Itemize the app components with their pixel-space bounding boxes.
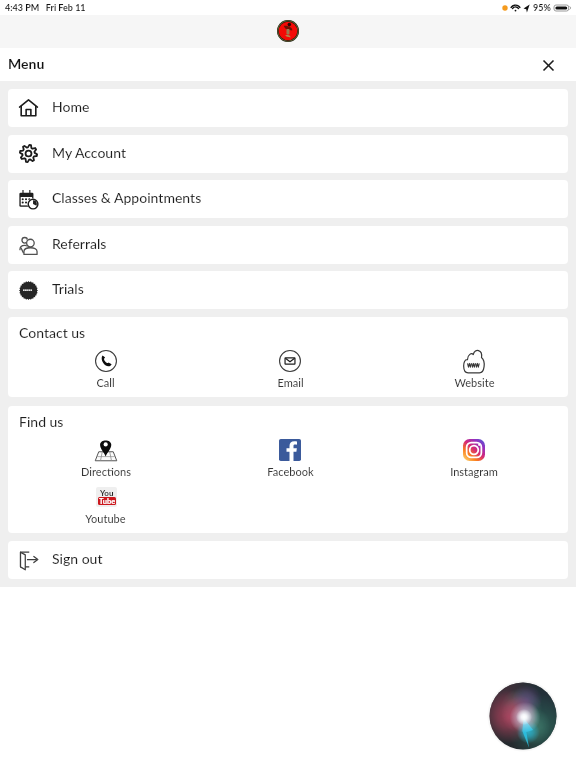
staticText: 95% xyxy=(533,2,551,13)
staticText: Menu xyxy=(8,55,45,72)
button[interactable]: Trials xyxy=(8,271,568,309)
button[interactable]: Referrals xyxy=(8,226,568,264)
button[interactable]: Website xyxy=(382,350,566,389)
button[interactable]: Instagram xyxy=(382,439,566,478)
staticText: Tube xyxy=(99,497,116,505)
staticText: Referrals xyxy=(52,235,107,252)
staticText: Sign out xyxy=(52,550,103,567)
button[interactable]: Facebook xyxy=(198,439,382,478)
button[interactable]: Sign out xyxy=(8,541,568,579)
staticText: Contact us xyxy=(19,324,86,341)
staticText: Directions xyxy=(81,465,131,478)
staticText: Facebook xyxy=(267,465,314,478)
button[interactable]: My Account xyxy=(8,135,568,173)
staticText: Find us xyxy=(19,413,64,430)
staticText: My Account xyxy=(52,144,126,161)
staticText: You xyxy=(100,488,114,498)
button[interactable]: Close menu xyxy=(536,53,560,77)
staticText: 4:43 PM Fri Feb 11 xyxy=(5,2,86,13)
button[interactable]: Email xyxy=(198,350,382,389)
button[interactable]: Call xyxy=(13,350,198,389)
staticText: Email xyxy=(277,376,304,389)
staticText: Youtube xyxy=(85,512,126,525)
staticText: Website xyxy=(454,376,495,389)
button[interactable]: Siri xyxy=(487,680,559,752)
button[interactable]: Home xyxy=(8,89,568,127)
staticText: Classes & Appointments xyxy=(52,189,202,206)
button[interactable]: Directions xyxy=(13,439,198,478)
staticText: Instagram xyxy=(450,465,498,478)
button[interactable]: Classes & Appointments xyxy=(8,180,568,218)
staticText: Trials xyxy=(52,280,84,297)
staticText: Home xyxy=(52,98,90,115)
button[interactable]: You xyxy=(13,486,198,525)
staticText: Call xyxy=(96,376,115,389)
